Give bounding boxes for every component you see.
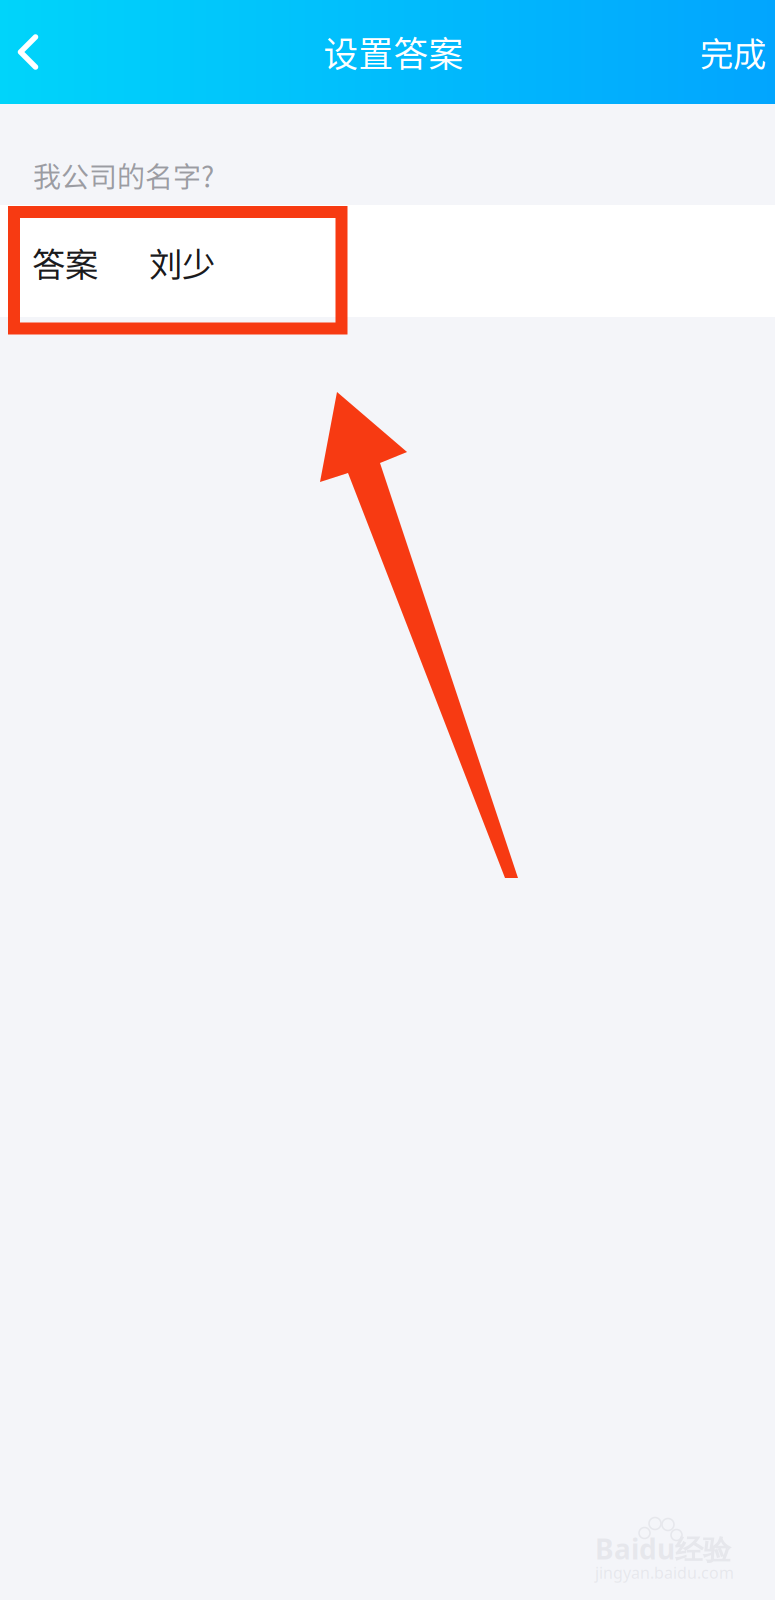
button[interactable]: Done [656, 0, 766, 104]
staticText: 刘少 [149, 238, 215, 286]
button[interactable]: Back [0, 0, 91, 104]
staticText: Baidu经验 [595, 1530, 731, 1567]
staticText: 我公司的名字? [33, 155, 214, 195]
staticText: 完成 [700, 28, 766, 76]
staticText: jingyan.baidu.com [595, 1562, 734, 1583]
button[interactable]: 答案 [0, 205, 775, 317]
staticText: 设置答案 [323, 27, 463, 77]
staticText: 答案 [32, 238, 98, 286]
